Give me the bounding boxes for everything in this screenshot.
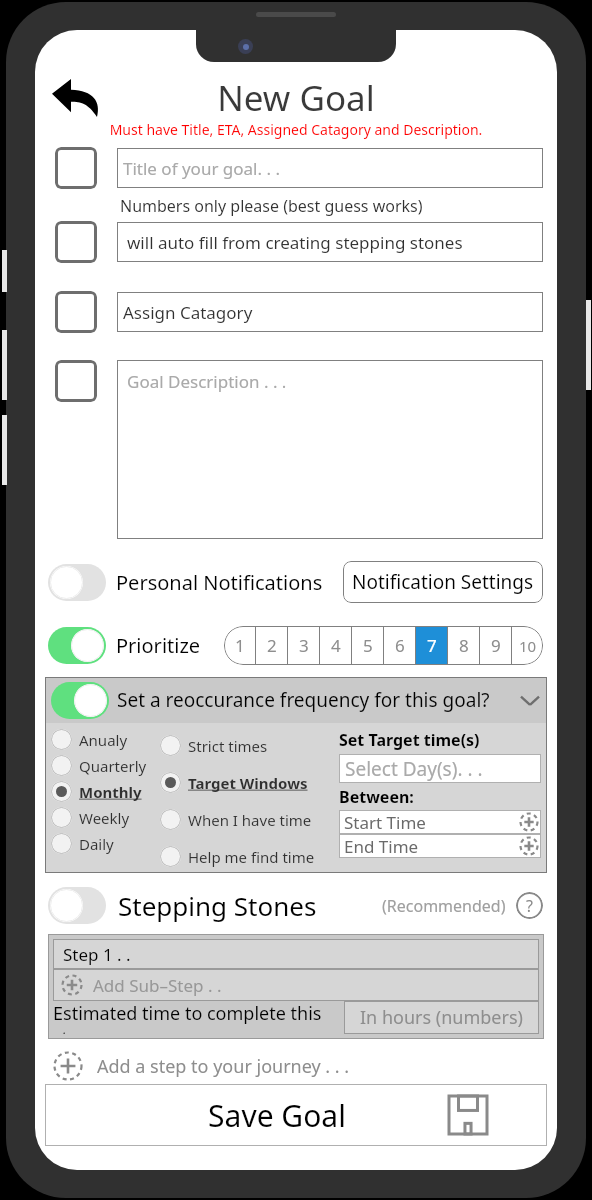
button[interactable]: 9 <box>480 626 511 665</box>
button[interactable]: Help me find time <box>160 846 315 867</box>
staticText: Notification Settings <box>352 569 534 595</box>
staticText: Monthly <box>79 782 142 802</box>
button[interactable]: Target Windows <box>160 772 308 793</box>
button[interactable]: Step 1 . . <box>53 939 539 969</box>
staticText: Estimated time to complete this step <box>53 1001 344 1034</box>
button[interactable]: Monthly <box>51 781 142 802</box>
button[interactable]: Back <box>51 77 101 117</box>
staticText: 5 <box>363 634 373 657</box>
button[interactable]: Title of your goal. . . <box>117 148 543 188</box>
button[interactable]: 7 <box>416 626 447 665</box>
button[interactable]: Checkbox <box>55 147 97 189</box>
staticText: Must have Title, ETA, Assigned Catagory … <box>35 120 557 139</box>
staticText: (Recommended) <box>382 895 506 917</box>
button[interactable]: Checkbox <box>55 360 97 402</box>
button[interactable]: 2 <box>256 626 287 665</box>
button[interactable]: Notification Settings <box>343 561 543 603</box>
staticText: ? <box>526 895 533 917</box>
button[interactable]: Select Day(s). . . <box>339 754 541 783</box>
staticText: End Time <box>344 835 419 858</box>
staticText: When I have time <box>188 810 312 830</box>
button[interactable]: Stepping Stones toggle <box>48 887 106 924</box>
button[interactable]: Reoccurance toggle <box>51 682 109 719</box>
button[interactable]: In hours (numbers) <box>344 1001 539 1034</box>
staticText: will auto fill from creating stepping st… <box>127 231 463 254</box>
staticText: Add Sub–Step . . <box>93 974 222 997</box>
staticText: 2 <box>267 634 277 657</box>
staticText: Numbers only please (best guess works) <box>120 195 423 217</box>
staticText: Step 1 . . <box>63 943 131 966</box>
button[interactable]: Weekly <box>51 807 130 828</box>
staticText: 1 <box>235 634 245 657</box>
staticText: In hours (numbers) <box>360 1005 523 1030</box>
button[interactable]: Daily <box>51 833 114 854</box>
staticText: 4 <box>331 634 341 657</box>
staticText: Anualy <box>79 730 128 750</box>
staticText: Start Time <box>344 811 426 834</box>
staticText: 8 <box>459 634 469 657</box>
button[interactable]: Start Time <box>339 810 541 834</box>
button[interactable]: Checkbox <box>55 221 97 263</box>
button[interactable]: 6 <box>384 626 415 665</box>
button[interactable]: 4 <box>320 626 351 665</box>
staticText: Help me find time <box>188 847 315 867</box>
button[interactable]: Help <box>516 892 543 919</box>
button[interactable]: Goal Description . . . <box>117 360 543 539</box>
button[interactable]: When I have time <box>160 809 312 830</box>
staticText: Assign Catagory <box>123 301 253 324</box>
staticText: Add a step to your journey . . . <box>97 1054 350 1079</box>
button[interactable]: Assign Catagory <box>117 292 543 332</box>
staticText: Strict times <box>188 736 268 756</box>
staticText: Weekly <box>79 808 130 828</box>
staticText: 10 <box>519 636 537 656</box>
staticText: Set Target time(s) <box>339 729 480 751</box>
staticText: 7 <box>427 634 437 657</box>
button[interactable]: Anualy <box>51 729 128 750</box>
staticText: Daily <box>79 834 114 854</box>
button[interactable]: Prioritize toggle <box>48 627 106 664</box>
button[interactable]: 5 <box>352 626 383 665</box>
staticText: Select Day(s). . . <box>345 756 483 782</box>
staticText: Save Goal <box>105 1095 449 1136</box>
staticText: New Goal <box>35 74 557 120</box>
button[interactable]: Reoccurance toggle <box>45 677 547 723</box>
staticText: 3 <box>299 634 309 657</box>
staticText: Target Windows <box>188 773 308 793</box>
button[interactable]: will auto fill from creating stepping st… <box>117 222 543 262</box>
staticText: 9 <box>491 634 501 657</box>
staticText: Set a reoccurance frequency for this goa… <box>117 687 490 713</box>
staticText: Prioritize <box>116 632 201 659</box>
staticText: Title of your goal. . . <box>123 157 280 180</box>
staticText: 6 <box>395 634 405 657</box>
button[interactable]: Add a step to your journey . . . <box>53 1051 557 1081</box>
staticText: Quarterly <box>79 756 147 776</box>
staticText: Goal Description . . . <box>127 370 287 393</box>
button[interactable]: Strict times <box>160 735 268 756</box>
button[interactable]: 10 <box>512 626 543 665</box>
staticText: Personal Notifications <box>116 569 323 596</box>
button[interactable]: End Time <box>339 834 541 858</box>
button[interactable]: Personal Notifications toggle <box>48 564 106 601</box>
button[interactable]: 8 <box>448 626 479 665</box>
button[interactable]: 1 <box>224 626 255 665</box>
staticText: Between: <box>339 786 414 808</box>
button[interactable]: Checkbox <box>55 291 97 333</box>
button[interactable]: Quarterly <box>51 755 147 776</box>
staticText: Stepping Stones <box>118 888 317 923</box>
button[interactable]: 3 <box>288 626 319 665</box>
button[interactable]: Save Goal <box>45 1084 547 1146</box>
button[interactable]: Add Sub–Step . . <box>53 969 539 1001</box>
